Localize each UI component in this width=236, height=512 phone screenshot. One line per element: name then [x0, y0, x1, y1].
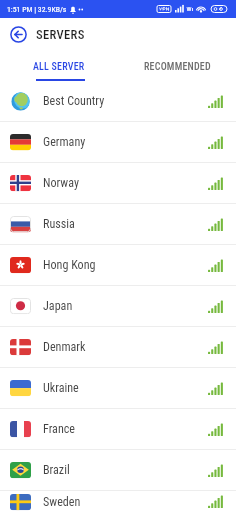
- staticText: Brazil: [43, 463, 70, 477]
- button[interactable]: [0, 18, 36, 50]
- button[interactable]: France: [0, 409, 236, 449]
- staticText: Hong Kong: [43, 258, 96, 272]
- button[interactable]: Best Country: [0, 81, 236, 121]
- button[interactable]: Brazil: [0, 450, 236, 490]
- staticText: Best Country: [43, 94, 105, 108]
- button[interactable]: Hong Kong: [0, 245, 236, 285]
- staticText: Japan: [43, 299, 73, 313]
- button[interactable]: RECOMMENDED: [118, 52, 236, 81]
- staticText: SERVERS: [36, 27, 85, 42]
- staticText: RECOMMENDED: [144, 61, 211, 73]
- staticText: 1:51 PM | 32.9KB/s: [7, 5, 67, 14]
- button[interactable]: Sweden: [0, 491, 236, 512]
- button[interactable]: Germany: [0, 122, 236, 162]
- button[interactable]: Norway: [0, 163, 236, 203]
- button[interactable]: Russia: [0, 204, 236, 244]
- staticText: Norway: [43, 176, 79, 190]
- staticText: Germany: [43, 135, 86, 149]
- staticText: Russia: [43, 217, 75, 231]
- button[interactable]: Japan: [0, 286, 236, 326]
- staticText: ALL SERVER: [33, 61, 85, 73]
- button[interactable]: Denmark: [0, 327, 236, 367]
- button[interactable]: ALL SERVER: [0, 52, 118, 81]
- staticText: Denmark: [43, 340, 86, 354]
- staticText: Sweden: [43, 495, 81, 509]
- staticText: France: [43, 422, 76, 436]
- button[interactable]: Ukraine: [0, 368, 236, 408]
- staticText: Ukraine: [43, 381, 79, 395]
